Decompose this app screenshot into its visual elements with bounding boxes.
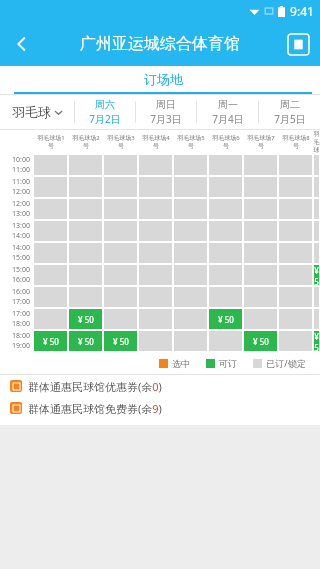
button[interactable]: 周六 (75, 95, 135, 129)
staticText: 羽毛球场9 (313, 130, 320, 154)
button[interactable]: ¥ 50 (314, 331, 319, 351)
staticText: 群体通惠民球馆优惠券(余0) (28, 379, 162, 394)
button[interactable]: Orders (276, 22, 320, 66)
button[interactable]: 群体通惠民球馆免费券(余9) (0, 397, 320, 419)
button[interactable]: ¥ 50 (244, 331, 277, 351)
button[interactable]: 羽毛球 (0, 95, 74, 129)
button[interactable]: 周一 (197, 95, 258, 129)
button[interactable]: Back (0, 22, 44, 66)
button[interactable]: ¥ 50 (69, 331, 102, 351)
staticText: 号 (118, 142, 124, 150)
button[interactable]: ¥ 50 (104, 331, 137, 351)
button[interactable]: ¥ 50 (34, 331, 67, 351)
button[interactable]: 订场地 (14, 66, 312, 94)
staticText: 号 (188, 142, 194, 150)
button[interactable]: 周二 (259, 95, 320, 129)
button[interactable]: 群体通惠民球馆优惠券(余0) (0, 375, 320, 397)
button[interactable]: ¥ 50 (314, 265, 319, 285)
staticText: 13:00 (12, 209, 30, 219)
staticText: 羽毛球场2 (72, 134, 100, 142)
staticText: 周六 (95, 98, 115, 111)
button[interactable]: 周日 (136, 95, 196, 129)
button[interactable]: ¥ 50 (209, 309, 242, 329)
staticText: 7月3日 (150, 112, 182, 126)
button[interactable]: ¥ 50 (69, 309, 102, 329)
staticText: ¥ 50 (314, 331, 319, 351)
